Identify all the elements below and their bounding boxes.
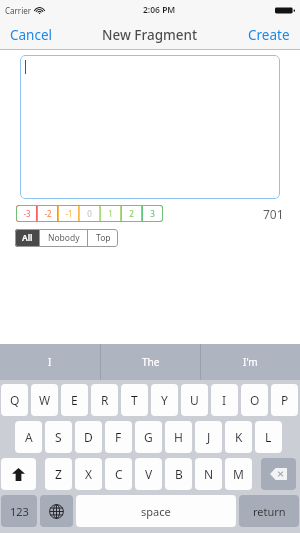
button[interactable]: Nobody bbox=[40, 229, 87, 247]
button[interactable]: Z bbox=[45, 458, 72, 490]
staticText: 2 bbox=[129, 208, 134, 219]
button[interactable]: K bbox=[225, 421, 252, 453]
staticText: -1 bbox=[65, 208, 73, 219]
staticText: Top bbox=[96, 232, 111, 244]
button[interactable]: Cancel bbox=[8, 23, 55, 47]
button[interactable]: The bbox=[101, 344, 200, 380]
staticText: 3 bbox=[150, 208, 155, 219]
button[interactable]: P bbox=[271, 384, 298, 416]
staticText: C bbox=[115, 466, 123, 482]
staticText: O bbox=[250, 392, 260, 408]
staticText: Y bbox=[161, 392, 168, 408]
button[interactable]: D bbox=[75, 421, 102, 453]
staticText: T bbox=[131, 392, 138, 408]
staticText: Cancel bbox=[10, 26, 53, 44]
staticText: J bbox=[207, 429, 211, 445]
button[interactable]: 3 bbox=[142, 205, 163, 222]
staticText: W bbox=[39, 392, 51, 408]
staticText: V bbox=[145, 466, 153, 482]
button[interactable]: G bbox=[135, 421, 162, 453]
staticText: I bbox=[222, 392, 227, 408]
staticText: Nobody bbox=[48, 232, 80, 244]
button[interactable]: J bbox=[195, 421, 222, 453]
staticText: Create bbox=[248, 26, 290, 44]
staticText: 123 bbox=[10, 504, 29, 519]
staticText: G bbox=[144, 429, 153, 445]
button[interactable]: F bbox=[105, 421, 132, 453]
staticText: 1 bbox=[108, 208, 113, 219]
button[interactable]: Q bbox=[1, 384, 28, 416]
button[interactable]: U bbox=[181, 384, 208, 416]
staticText: return bbox=[253, 504, 286, 519]
staticText: U bbox=[190, 392, 199, 408]
button[interactable]: R bbox=[91, 384, 118, 416]
staticText: New Fragment bbox=[102, 26, 198, 44]
staticText: R bbox=[101, 392, 109, 408]
staticText: A bbox=[25, 429, 33, 445]
button[interactable]: L bbox=[255, 421, 282, 453]
staticText: space bbox=[141, 504, 171, 519]
button[interactable]: Shift bbox=[1, 458, 36, 490]
staticText: Carrier bbox=[5, 5, 32, 16]
staticText: All bbox=[22, 232, 33, 244]
button[interactable]: space bbox=[76, 495, 236, 527]
button[interactable]: All bbox=[15, 229, 39, 247]
staticText: 701 bbox=[263, 206, 284, 222]
staticText: F bbox=[115, 429, 122, 445]
button[interactable]: Backspace bbox=[261, 458, 296, 490]
button[interactable]: Y bbox=[151, 384, 178, 416]
staticText: Q bbox=[10, 392, 20, 408]
button[interactable]: N bbox=[195, 458, 222, 490]
button[interactable]: I'm bbox=[201, 344, 300, 380]
staticText: Z bbox=[55, 466, 62, 482]
button[interactable]: I bbox=[211, 384, 238, 416]
button[interactable]: Create bbox=[246, 23, 292, 47]
button[interactable]: V bbox=[135, 458, 162, 490]
staticText: D bbox=[84, 429, 93, 445]
button[interactable]: Top bbox=[88, 229, 118, 247]
button[interactable]: Change keyboard bbox=[40, 495, 73, 527]
staticText: K bbox=[235, 429, 243, 445]
staticText: L bbox=[265, 429, 272, 445]
staticText: I'm bbox=[243, 355, 258, 369]
button[interactable]: X bbox=[75, 458, 102, 490]
button[interactable] bbox=[20, 55, 280, 199]
staticText: H bbox=[174, 429, 183, 445]
button[interactable]: I bbox=[0, 344, 100, 380]
button[interactable]: O bbox=[241, 384, 268, 416]
button[interactable]: 0 bbox=[79, 205, 100, 222]
staticText: -3 bbox=[23, 208, 31, 219]
button[interactable]: -1 bbox=[58, 205, 79, 222]
button[interactable]: -2 bbox=[37, 205, 58, 222]
staticText: -2 bbox=[44, 208, 52, 219]
button[interactable]: return bbox=[239, 495, 299, 527]
button[interactable]: -3 bbox=[16, 205, 37, 222]
staticText: P bbox=[281, 392, 289, 408]
button[interactable]: B bbox=[165, 458, 192, 490]
staticText: S bbox=[55, 429, 62, 445]
button[interactable]: A bbox=[15, 421, 42, 453]
button[interactable]: 123 bbox=[1, 495, 37, 527]
button[interactable]: M bbox=[225, 458, 252, 490]
button[interactable]: W bbox=[31, 384, 58, 416]
staticText: I bbox=[48, 355, 52, 369]
button[interactable]: E bbox=[61, 384, 88, 416]
button[interactable]: H bbox=[165, 421, 192, 453]
button[interactable]: S bbox=[45, 421, 72, 453]
staticText: 0 bbox=[87, 208, 92, 219]
staticText: X bbox=[85, 466, 93, 482]
button[interactable]: 2 bbox=[121, 205, 142, 222]
staticText: The bbox=[142, 355, 160, 369]
button[interactable]: C bbox=[105, 458, 132, 490]
staticText: B bbox=[175, 466, 183, 482]
staticText: M bbox=[233, 466, 244, 482]
button[interactable]: 1 bbox=[100, 205, 121, 222]
staticText: 2:06 PM bbox=[143, 4, 176, 16]
staticText: N bbox=[204, 466, 214, 482]
button[interactable]: T bbox=[121, 384, 148, 416]
staticText: E bbox=[71, 392, 78, 408]
